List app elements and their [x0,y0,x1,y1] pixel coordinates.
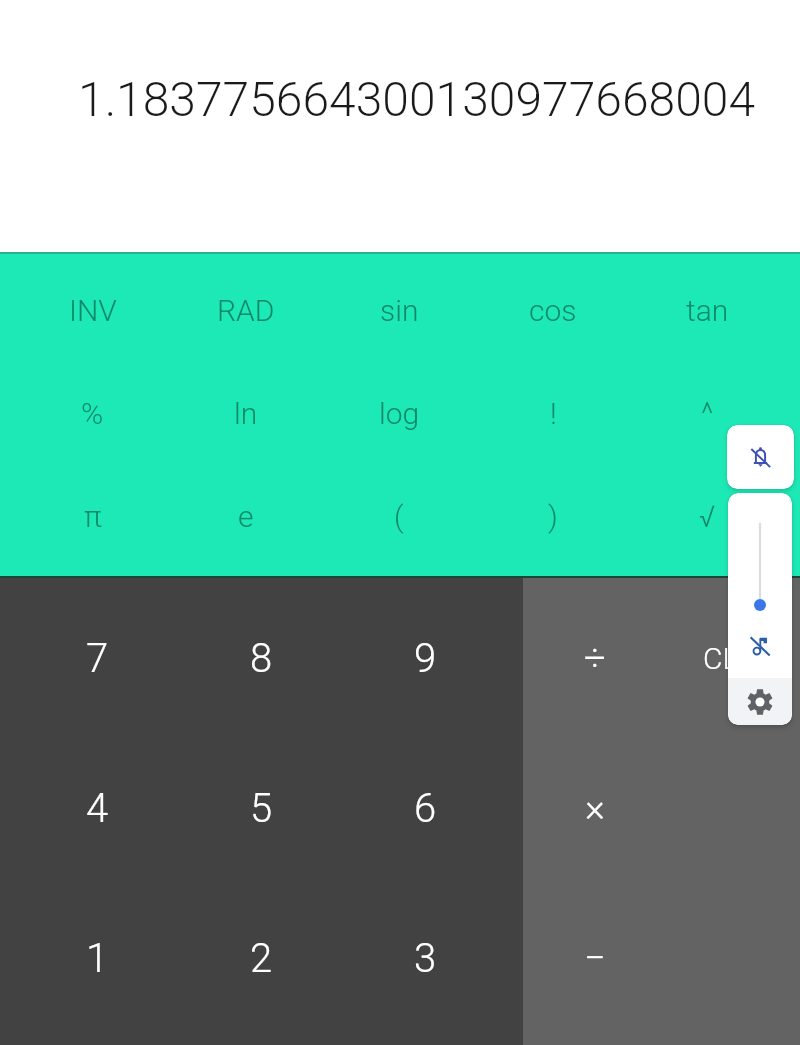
button[interactable]: e [169,465,322,568]
button[interactable]: log [322,362,476,465]
button[interactable]: 9 [343,583,507,733]
staticText: 6 [414,785,437,832]
button[interactable]: CLR [661,583,800,733]
button[interactable]: 3 [343,883,507,1033]
button[interactable]: ÷ [523,583,661,733]
button[interactable]: 8 [179,583,343,733]
button[interactable]: 4 [16,733,179,883]
staticText: ÷ [584,636,606,681]
button[interactable]: ) [476,465,630,568]
button[interactable]: ^ [630,362,784,465]
button[interactable]: ! [476,362,630,465]
staticText: ln [234,396,258,431]
button[interactable]: cos [476,259,630,362]
button[interactable]: 2 [179,883,343,1033]
staticText: cos [529,293,577,328]
staticText: 2 [250,935,273,982]
button[interactable]: tan [630,259,784,362]
button[interactable]: √ [630,465,784,568]
staticText: 1 [86,935,109,982]
button[interactable]: Settings [728,678,792,725]
staticText: 8 [250,635,273,682]
button[interactable]: % [16,362,169,465]
button[interactable]: 6 [343,733,507,883]
staticText: √ [699,499,716,534]
button[interactable]: × [523,733,661,883]
button[interactable]: − [523,883,661,1033]
staticText: × [585,786,605,831]
staticText: e [238,499,254,534]
button[interactable]: Mute [744,630,776,662]
button[interactable]: RAD [169,259,322,362]
button[interactable]: Ringer mode [727,425,794,489]
button[interactable]: 7 [16,583,179,733]
button[interactable]: 1 [16,883,179,1033]
staticText: 4 [86,785,109,832]
staticText: tan [686,293,729,328]
button[interactable]: 5 [179,733,343,883]
staticText: ) [548,499,558,534]
staticText: ( [394,499,404,534]
button[interactable]: π [16,465,169,568]
button[interactable]: ln [169,362,322,465]
staticText: ! [550,396,557,431]
staticText: ^ [701,396,714,431]
staticText: RAD [217,293,275,328]
button[interactable]: ( [322,465,476,568]
staticText: sin [380,293,419,328]
staticText: 9 [414,635,437,682]
staticText: INV [69,293,117,328]
staticText: 1.183775664300130977668004 [78,71,756,127]
staticText: 3 [414,935,437,982]
staticText: π [84,499,102,534]
staticText: CLR [703,641,758,676]
staticText: − [584,936,606,981]
staticText: log [379,396,420,431]
staticText: 7 [86,635,109,682]
button[interactable]: INV [16,259,169,362]
staticText: 5 [250,785,273,832]
button[interactable]: sin [322,259,476,362]
staticText: % [81,396,104,431]
